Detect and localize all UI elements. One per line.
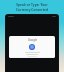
button[interactable]: Google [9,36,55,58]
staticText: Speak or Type: Your [16,3,48,7]
staticText: Currency Converted [16,8,48,12]
staticText: Google [28,38,37,42]
button[interactable]: Voice assistant [29,44,35,50]
